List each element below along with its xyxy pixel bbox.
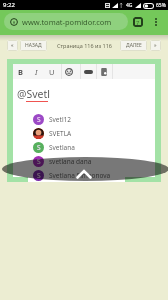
staticText: S bbox=[37, 115, 41, 124]
staticText: U bbox=[49, 67, 55, 77]
staticText: « bbox=[11, 42, 14, 49]
button[interactable]: More options bbox=[149, 15, 163, 29]
staticText: » bbox=[154, 42, 157, 49]
staticText: Svetl12 bbox=[49, 115, 71, 124]
button[interactable]: S bbox=[28, 140, 125, 154]
staticText: S bbox=[37, 157, 41, 166]
staticText: @Svetl bbox=[17, 87, 50, 101]
staticText: Страница 116 из 116 bbox=[57, 42, 112, 49]
staticText: S bbox=[37, 143, 41, 152]
button[interactable]: S bbox=[28, 112, 125, 126]
button[interactable]: Tabs bbox=[131, 15, 145, 29]
staticText: S bbox=[37, 171, 41, 180]
staticText: www.tomat-pomidor.com bbox=[22, 17, 112, 27]
button[interactable]: I bbox=[28, 64, 44, 79]
button[interactable]: Insert image bbox=[96, 64, 112, 79]
staticText: B bbox=[18, 67, 23, 77]
button[interactable]: Emoji bbox=[61, 64, 77, 79]
staticText: Svetlana bbox=[49, 143, 75, 152]
staticText: 4G bbox=[126, 2, 133, 9]
staticText: SVETLA bbox=[49, 129, 72, 138]
button[interactable]: S bbox=[28, 154, 125, 168]
button[interactable]: www.tomat-pomidor.com bbox=[4, 13, 128, 30]
button[interactable]: S bbox=[28, 168, 125, 182]
button[interactable]: SVETLA bbox=[28, 126, 125, 140]
staticText: НАЗАД bbox=[25, 42, 42, 49]
button[interactable]: НАЗАД bbox=[20, 40, 47, 51]
button[interactable]: « bbox=[7, 40, 18, 51]
staticText: 7 bbox=[136, 19, 140, 26]
button[interactable]: U bbox=[44, 64, 60, 79]
button[interactable]: B bbox=[12, 64, 28, 79]
button[interactable]: ДАЛЕЕ bbox=[120, 40, 147, 51]
button[interactable]: » bbox=[150, 40, 161, 51]
staticText: 65% bbox=[156, 2, 166, 9]
staticText: I bbox=[35, 67, 38, 77]
button[interactable]: Link bbox=[80, 64, 96, 79]
staticText: ДАЛЕЕ bbox=[126, 42, 142, 49]
staticText: Svetlana Simeonova bbox=[49, 171, 111, 180]
staticText: 9:22 bbox=[3, 1, 15, 9]
staticText: svetlana dana bbox=[49, 157, 92, 166]
